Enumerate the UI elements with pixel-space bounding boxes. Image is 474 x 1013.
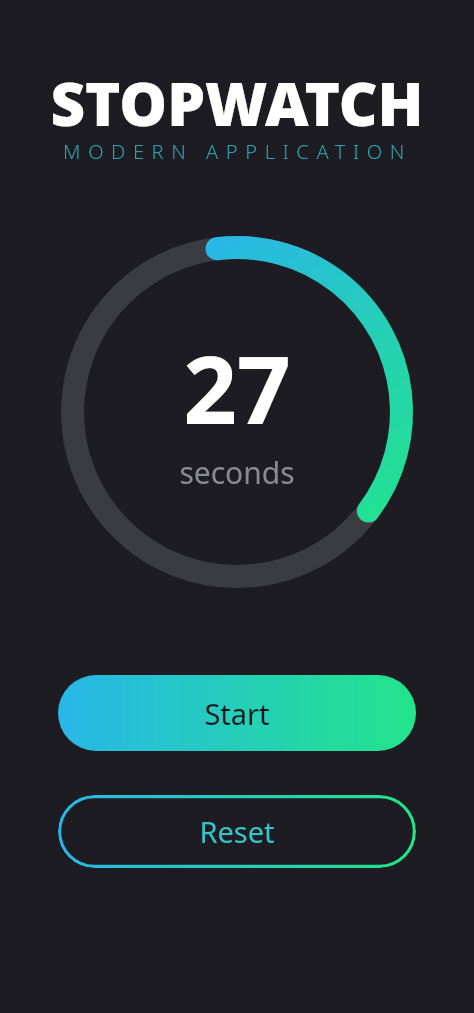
staticText: MODERN APPLICATION (63, 138, 412, 165)
staticText: seconds (179, 452, 295, 493)
staticText: Reset (199, 812, 275, 851)
button[interactable]: Reset (58, 795, 416, 868)
staticText: Start (204, 694, 270, 733)
staticText: 27 (183, 324, 291, 452)
button[interactable]: Start (58, 675, 416, 751)
staticText: STOPWATCH (50, 62, 424, 144)
